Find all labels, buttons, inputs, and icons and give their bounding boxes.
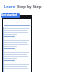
staticText: Get started now: [1, 13, 20, 18]
staticText: Learn: [4, 4, 17, 9]
button[interactable]: [4, 64, 30, 72]
button[interactable]: [4, 52, 30, 64]
button[interactable]: [4, 28, 30, 40]
button[interactable]: Get started: [1, 13, 20, 18]
button[interactable]: [4, 40, 30, 52]
staticText: Step by Step: [17, 4, 42, 9]
